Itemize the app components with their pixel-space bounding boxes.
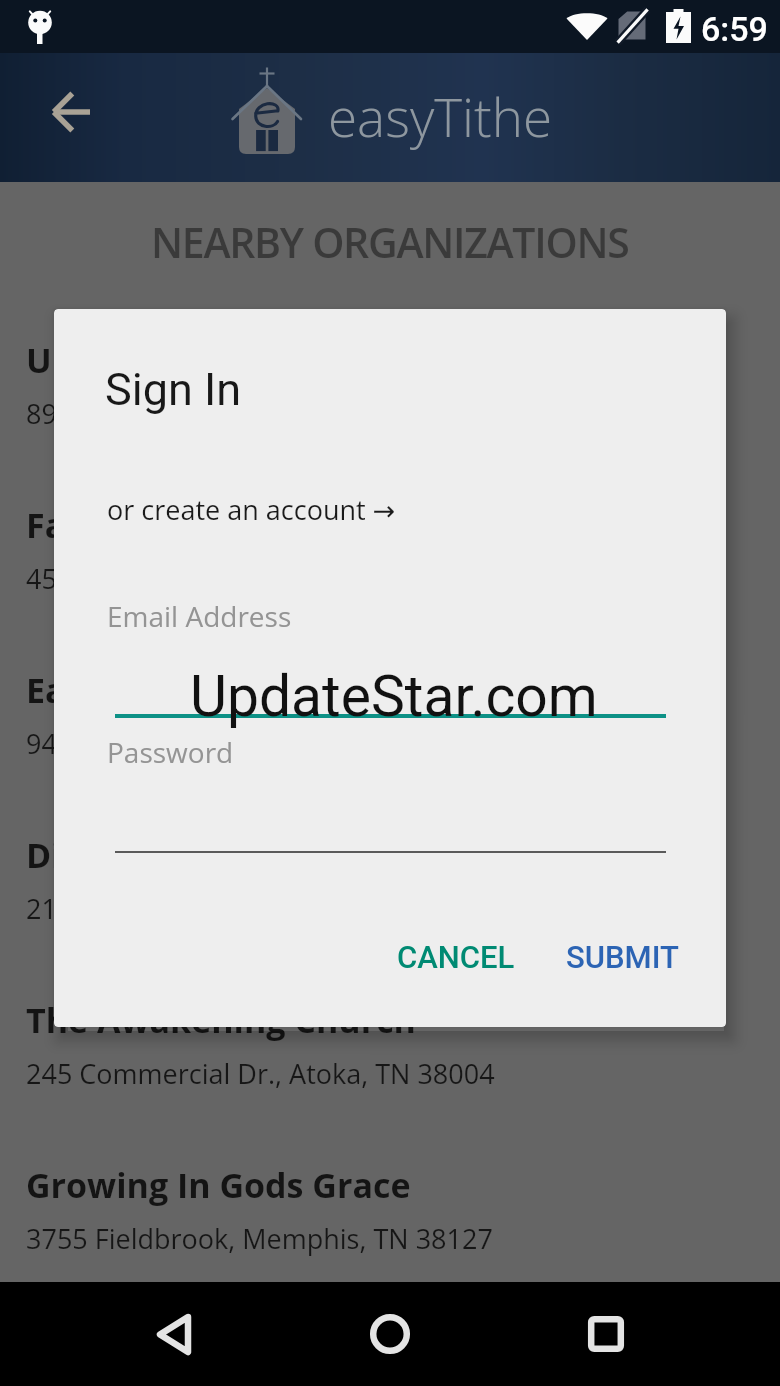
staticText: 9401 Poplar Ave., Germantown, TN 38138 — [26, 725, 550, 762]
button[interactable]: Growing In Gods Grace — [0, 1127, 780, 1292]
staticText: 2100 Whitten Rd., Bartlett, TN 38133 — [26, 890, 484, 927]
staticText: 3755 Fieldbrook, Memphis, TN 38127 — [26, 1220, 493, 1257]
staticText: 245 Commercial Dr., Atoka, TN 38004 — [26, 1055, 495, 1092]
staticText: SUBMIT — [566, 939, 679, 975]
button[interactable]: Back — [120, 1282, 228, 1386]
staticText: UpdateStar.com — [190, 663, 598, 730]
staticText: NEARBY ORGANIZATIONS — [151, 214, 629, 270]
button[interactable]: Discovery Church — [0, 797, 780, 962]
staticText: East Side Chapel — [26, 667, 303, 713]
button[interactable]: or create an account → — [104, 489, 399, 530]
staticText: easyTithe — [328, 80, 553, 152]
staticText: United Methodist Church — [26, 337, 454, 383]
button[interactable]: Home — [336, 1282, 444, 1386]
button[interactable]: United Methodist Church — [0, 302, 780, 467]
staticText: Faith Baptist Church — [26, 502, 374, 548]
button[interactable]: The Awakening Church — [0, 962, 780, 1127]
staticText: Password — [107, 733, 234, 771]
staticText: The Awakening Church — [26, 997, 416, 1043]
staticText: Growing In Gods Grace — [26, 1162, 411, 1208]
staticText: CANCEL — [397, 939, 515, 975]
button[interactable]: CANCEL — [379, 919, 533, 995]
button[interactable]: East Side Chapel — [0, 632, 780, 797]
staticText: 4520 Summer Ave., Memphis, TN 38122 — [26, 560, 527, 597]
button[interactable]: SUBMIT — [548, 919, 697, 995]
staticText: 6:59 — [701, 9, 768, 49]
button[interactable]: Navigate up — [25, 58, 115, 166]
staticText: 890 Main St., Memphis, TN 38103 — [26, 395, 446, 432]
button[interactable]: Faith Baptist Church — [0, 467, 780, 632]
staticText: Sign In — [105, 363, 242, 416]
staticText: Discovery Church — [26, 832, 322, 878]
button[interactable]: Recent apps — [552, 1282, 660, 1386]
staticText: Email Address — [107, 597, 292, 635]
staticText: or create an account → — [107, 491, 396, 528]
